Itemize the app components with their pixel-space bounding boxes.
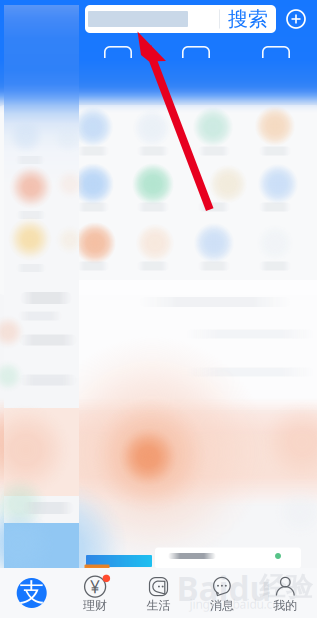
staticText: jingyan.baidu.com [189,596,290,612]
staticText: 经验 [259,571,313,603]
staticText: 我的 [273,598,297,613]
button[interactable]: 添加 [282,5,310,33]
button[interactable]: 生活 [127,568,190,618]
staticText: 支 [19,577,44,608]
staticText: 消息 [210,598,234,613]
button[interactable]: 快捷入口 [0,0,317,618]
button[interactable]: 快捷入口 [0,0,317,618]
button[interactable]: 快捷入口 [0,0,317,618]
button[interactable]: ¥ [63,568,127,618]
button[interactable]: 搜索 [85,5,276,33]
button[interactable]: 消息 [190,568,254,618]
staticText: 理财 [83,598,107,613]
staticText: Baidu [176,566,271,610]
staticText: 生活 [146,598,170,613]
staticText: 搜索 [228,7,268,31]
button[interactable]: 我的 [254,568,317,618]
staticText: ¥ [90,575,100,598]
button[interactable]: 支付宝首页 [0,568,63,618]
